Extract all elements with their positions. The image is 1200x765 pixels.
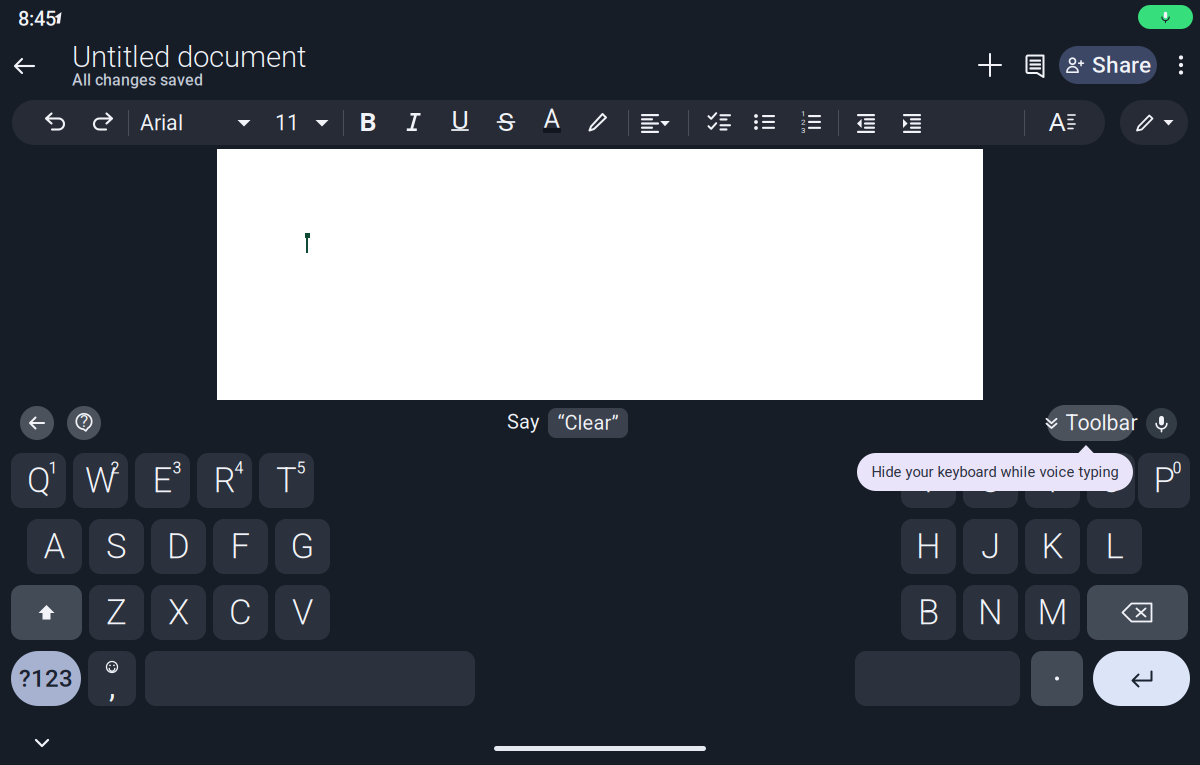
button[interactable]: Arial bbox=[140, 108, 250, 138]
button[interactable]: Insert bbox=[968, 43, 1012, 87]
button[interactable]: A bbox=[27, 519, 82, 574]
button[interactable]: S bbox=[89, 519, 144, 574]
button[interactable]: X bbox=[151, 585, 206, 640]
button[interactable]: Text style bbox=[1041, 100, 1085, 144]
staticText: S bbox=[498, 106, 514, 138]
staticText: O bbox=[1099, 460, 1122, 501]
button[interactable]: Checklist bbox=[698, 100, 742, 144]
button[interactable]: Italic bbox=[392, 100, 436, 144]
staticText: 2 bbox=[110, 459, 119, 477]
staticText: A bbox=[1048, 106, 1065, 138]
staticText: S bbox=[106, 526, 127, 567]
staticText: Hide your keyboard while voice typing bbox=[871, 463, 1118, 481]
staticText: W bbox=[85, 460, 116, 501]
button[interactable]: G bbox=[275, 519, 330, 574]
button[interactable]: U bbox=[963, 453, 1018, 508]
staticText: 9 bbox=[1117, 459, 1126, 477]
button[interactable]: 11 bbox=[276, 108, 306, 138]
button[interactable]: O bbox=[1087, 453, 1135, 508]
staticText: 7 bbox=[1000, 459, 1009, 477]
staticText: R bbox=[213, 460, 235, 501]
button[interactable]: Z bbox=[89, 585, 144, 640]
staticText: G bbox=[290, 526, 314, 567]
button[interactable]: Return bbox=[1093, 651, 1190, 706]
button[interactable]: Undo bbox=[34, 100, 78, 144]
staticText: , bbox=[109, 667, 115, 705]
staticText: J bbox=[981, 526, 1000, 567]
staticText: N bbox=[978, 592, 1003, 633]
button[interactable]: Y bbox=[901, 453, 956, 508]
button[interactable]: Back bbox=[2, 44, 46, 88]
button[interactable]: Choose font size bbox=[309, 110, 335, 136]
button[interactable]: Choose font bbox=[231, 110, 257, 136]
button[interactable]: C bbox=[213, 585, 268, 640]
button[interactable]: Period bbox=[1031, 651, 1083, 706]
staticText: Arial bbox=[140, 110, 183, 135]
button[interactable]: B bbox=[901, 585, 956, 640]
staticText: 3 bbox=[801, 126, 805, 135]
button[interactable]: J bbox=[963, 519, 1018, 574]
button[interactable]: Share bbox=[1059, 46, 1157, 84]
button[interactable]: M bbox=[1025, 585, 1080, 640]
button[interactable]: D bbox=[151, 519, 206, 574]
button[interactable]: Increase indent bbox=[890, 100, 934, 144]
button[interactable]: More options bbox=[1163, 43, 1199, 87]
button[interactable]: W bbox=[73, 453, 128, 508]
button[interactable]: Editing mode bbox=[1120, 100, 1188, 145]
button[interactable]: T bbox=[259, 453, 314, 508]
staticText: U bbox=[979, 460, 1002, 501]
button[interactable]: L bbox=[1087, 519, 1142, 574]
staticText: E bbox=[152, 460, 172, 501]
staticText: M bbox=[1037, 592, 1067, 633]
button[interactable]: P bbox=[1138, 453, 1190, 508]
staticText: All changes saved bbox=[72, 71, 203, 89]
button[interactable]: Hide keyboard bbox=[27, 728, 57, 758]
button[interactable]: Text colour bbox=[530, 100, 574, 144]
button[interactable]: Back bbox=[20, 406, 54, 440]
button[interactable]: Bulleted list bbox=[743, 100, 787, 144]
button[interactable]: R bbox=[197, 453, 252, 508]
staticText: Say bbox=[507, 410, 539, 434]
staticText: F bbox=[230, 526, 250, 567]
button[interactable]: Voice typing active bbox=[1138, 5, 1193, 29]
button[interactable]: Decrease indent bbox=[844, 100, 888, 144]
button[interactable]: K bbox=[1025, 519, 1080, 574]
button[interactable]: I bbox=[1025, 453, 1080, 508]
button[interactable]: Strikethrough bbox=[484, 100, 528, 144]
button[interactable]: ?123 bbox=[11, 651, 81, 706]
button[interactable]: H bbox=[901, 519, 956, 574]
button[interactable]: V bbox=[275, 585, 330, 640]
button[interactable]: N bbox=[963, 585, 1018, 640]
button[interactable]: E bbox=[135, 453, 190, 508]
staticText: 5 bbox=[296, 459, 305, 477]
button[interactable]: Shift bbox=[11, 585, 82, 640]
button[interactable]: Alignment bbox=[630, 100, 674, 144]
button[interactable]: Help bbox=[67, 406, 101, 440]
staticText: X bbox=[168, 592, 189, 633]
button[interactable]: Bold bbox=[346, 100, 390, 144]
staticText: D bbox=[167, 526, 190, 567]
staticText: 8:45 bbox=[18, 7, 56, 31]
staticText: 11 bbox=[275, 110, 299, 135]
staticText: Share bbox=[1092, 52, 1151, 78]
staticText: Q bbox=[27, 460, 50, 501]
staticText: Y bbox=[918, 460, 939, 501]
button[interactable]: F bbox=[213, 519, 268, 574]
staticText: V bbox=[292, 592, 313, 633]
staticText: P bbox=[1153, 460, 1174, 501]
staticText: ? bbox=[80, 411, 88, 431]
button[interactable]: Redo bbox=[80, 100, 124, 144]
button[interactable]: Emoji and comma bbox=[88, 651, 136, 706]
button[interactable]: Voice typing bbox=[1146, 408, 1177, 439]
button[interactable]: Highlight colour bbox=[576, 100, 620, 144]
button[interactable]: Q bbox=[11, 453, 66, 508]
button[interactable]: Comments bbox=[1013, 43, 1057, 87]
staticText: 4 bbox=[234, 459, 243, 477]
button[interactable]: Numbered list bbox=[789, 100, 833, 144]
button[interactable]: Underline bbox=[438, 100, 482, 144]
button[interactable]: Toolbar bbox=[1043, 405, 1137, 441]
button[interactable]: Backspace bbox=[1087, 585, 1188, 640]
staticText: H bbox=[916, 526, 941, 567]
